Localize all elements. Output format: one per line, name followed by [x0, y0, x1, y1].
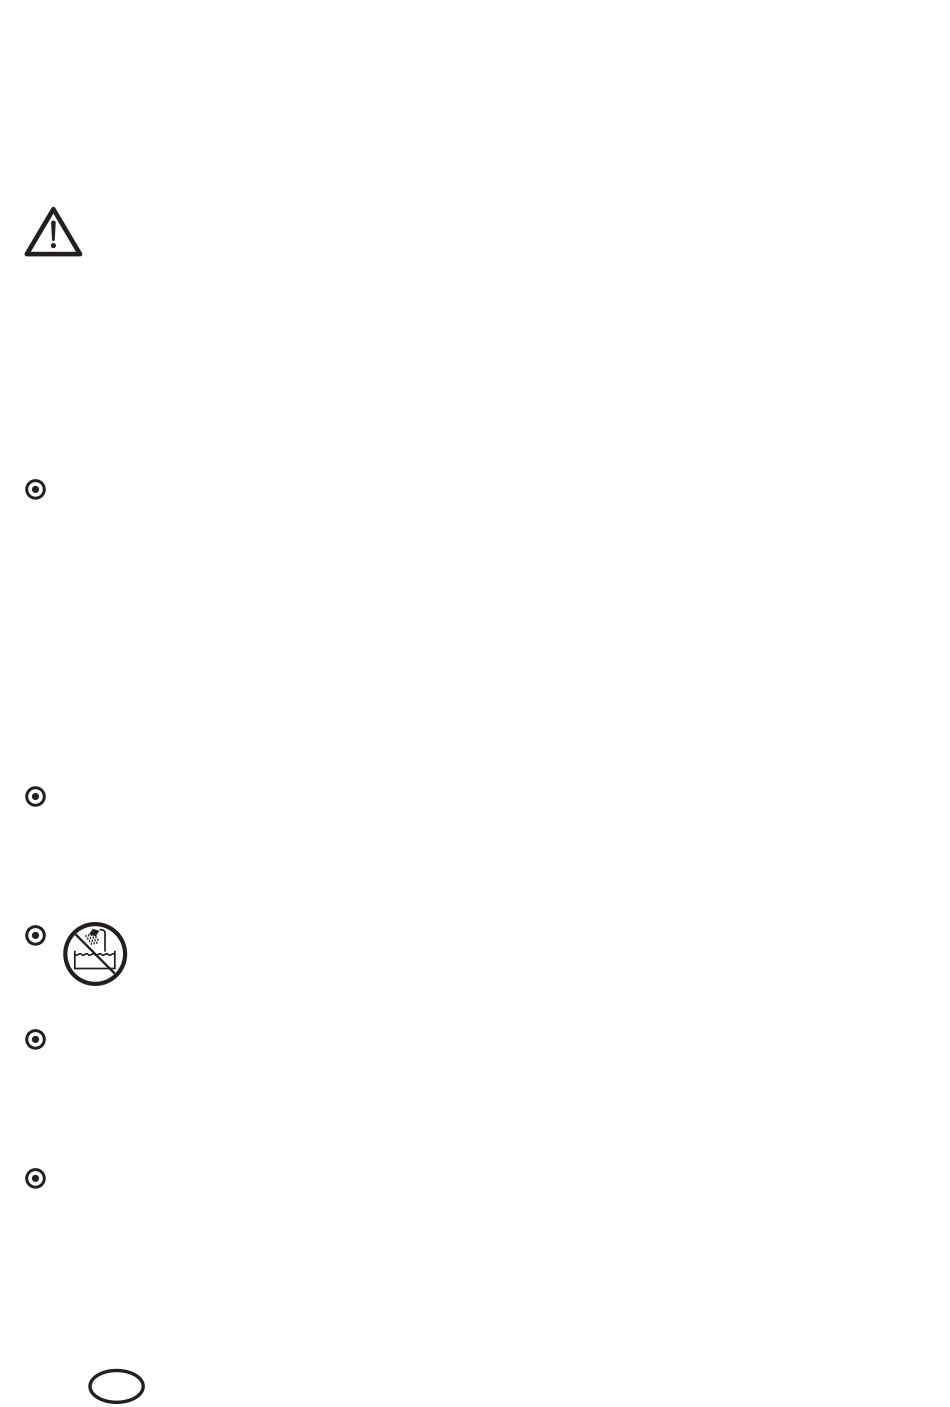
button[interactable]: Warning: [24, 205, 82, 256]
button[interactable]: Do not immerse in water or shower: [63, 922, 127, 986]
button[interactable]: Page number: [89, 1368, 145, 1404]
